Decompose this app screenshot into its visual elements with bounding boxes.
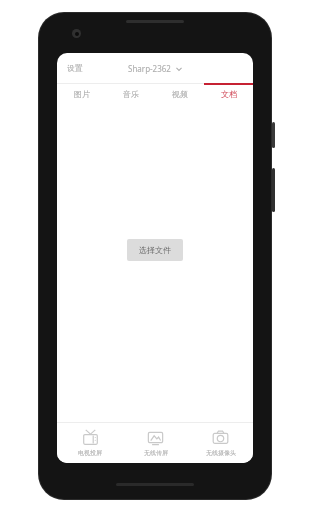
staticText: 无线摄像头 bbox=[206, 449, 236, 457]
staticText: 选择文件 bbox=[139, 245, 171, 255]
staticText: 音乐 bbox=[123, 89, 139, 99]
button[interactable]: 电视投屏 bbox=[57, 423, 123, 463]
staticText: 文档 bbox=[221, 89, 237, 99]
staticText: 视频 bbox=[172, 89, 188, 99]
staticText: Sharp-2362 bbox=[128, 63, 171, 74]
staticText: 设置 bbox=[67, 63, 83, 73]
button[interactable]: 无线摄像头 bbox=[188, 423, 253, 463]
other: 无线摄像头 bbox=[212, 429, 229, 446]
button[interactable]: 文档 bbox=[204, 83, 253, 105]
button[interactable]: 视频 bbox=[155, 83, 204, 105]
staticText: 无线传屏 bbox=[144, 449, 168, 457]
staticText: 图片 bbox=[74, 89, 90, 99]
button[interactable]: 图片 bbox=[57, 83, 106, 105]
button[interactable]: 音乐 bbox=[106, 83, 155, 105]
button[interactable]: 无线传屏 bbox=[123, 423, 188, 463]
other: 电视投屏 bbox=[82, 429, 99, 446]
staticText: 电视投屏 bbox=[78, 449, 102, 457]
button[interactable]: 选择文件 bbox=[127, 239, 183, 261]
other: 无线传屏 bbox=[147, 429, 164, 446]
button[interactable]: Sharp-2362 bbox=[120, 58, 191, 79]
button[interactable]: 设置 bbox=[57, 57, 93, 79]
